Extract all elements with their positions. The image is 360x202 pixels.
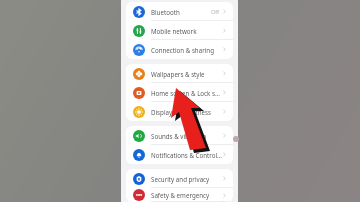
staticText: Security and privacy (151, 175, 222, 183)
staticText: Safety & emergency (151, 191, 222, 199)
staticText: Notifications & Control center (151, 151, 222, 159)
staticText: Connection & sharing (151, 46, 222, 54)
button[interactable]: Security and privacy (126, 169, 233, 188)
staticText: Home screen & Lock screen (151, 89, 222, 97)
staticText: Wallpapers & style (151, 70, 222, 78)
button[interactable]: Wallpapers & style (126, 64, 233, 83)
button[interactable]: Mobile network (126, 21, 233, 40)
button[interactable]: Connection & sharing (126, 40, 233, 59)
button[interactable]: Safety & emergency (126, 188, 233, 202)
staticText: Sounds & vibration (151, 132, 222, 140)
button[interactable]: Bluetooth (126, 2, 233, 21)
button[interactable]: Sounds & vibration (126, 126, 233, 145)
button[interactable]: Home screen & Lock screen (126, 83, 233, 102)
staticText: Bluetooth (151, 8, 211, 16)
button[interactable]: Display & brightness (126, 102, 233, 121)
button[interactable]: Notifications & Control center (126, 145, 233, 164)
staticText: Off (211, 8, 219, 15)
staticText: Mobile network (151, 27, 222, 35)
staticText: Display & brightness (151, 108, 222, 116)
